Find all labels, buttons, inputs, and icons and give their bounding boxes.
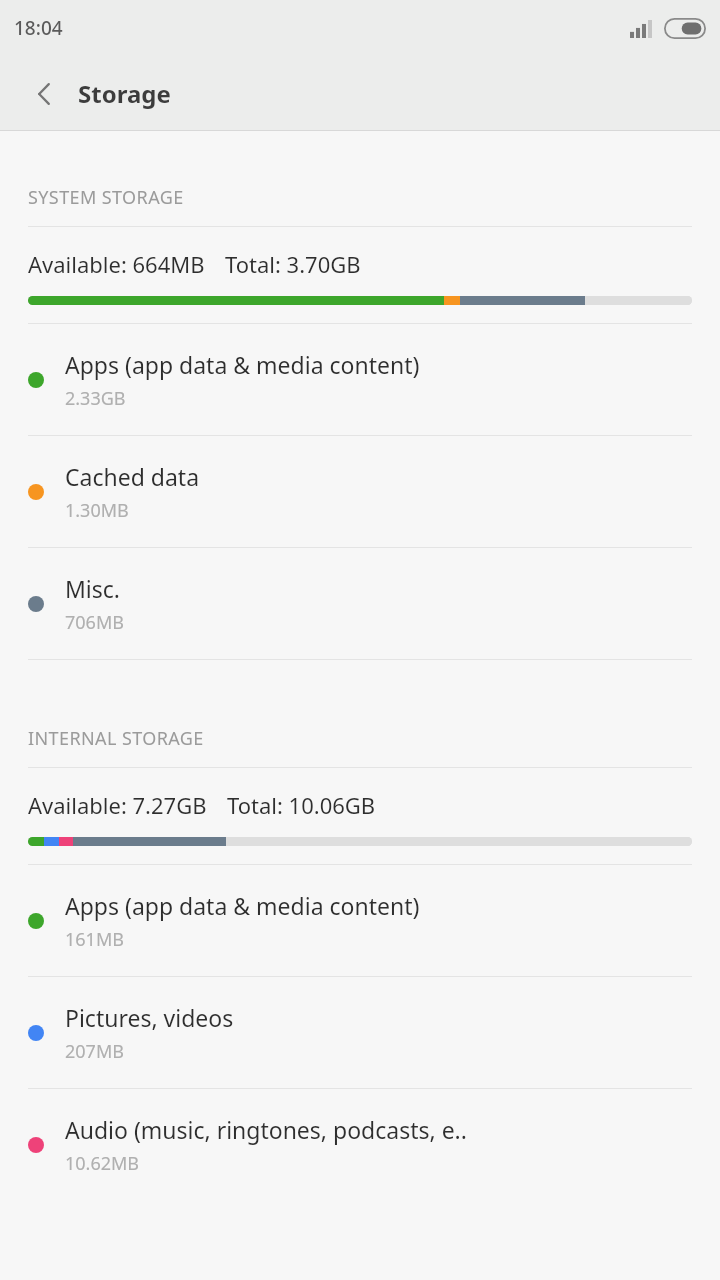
button[interactable]: Pictures, videos [0,977,720,1088]
staticText: Storage [78,77,171,110]
button[interactable]: Apps (app data & media content) [0,324,720,435]
button[interactable]: Cached data [0,436,720,547]
staticText: Total: 3.70GB [225,249,361,279]
staticText: 1.30MB [65,498,129,523]
staticText: Pictures, videos [65,1002,234,1033]
button[interactable]: Back [16,66,72,122]
staticText: Total: 10.06GB [227,790,376,820]
button[interactable]: Apps (app data & media content) [0,865,720,976]
staticText: Cached data [65,461,200,492]
staticText: 161MB [65,927,124,952]
staticText: 2.33GB [65,386,126,411]
staticText: Misc. [65,573,121,604]
staticText: 207MB [65,1039,124,1064]
staticText: SYSTEM STORAGE [28,185,184,210]
staticText: INTERNAL STORAGE [28,726,204,751]
staticText: Apps (app data & media content) [65,349,420,380]
staticText: Audio (music, ringtones, podcasts, e.. [65,1114,467,1145]
staticText: Available: 7.27GB [28,790,207,820]
staticText: 18:04 [14,15,63,41]
staticText: 706MB [65,610,124,635]
staticText: 10.62MB [65,1151,140,1176]
staticText: Available: 664MB [28,249,205,279]
button[interactable]: Audio (music, ringtones, podcasts, e.. [0,1089,720,1200]
button[interactable]: Misc. [0,548,720,659]
staticText: Apps (app data & media content) [65,890,420,921]
